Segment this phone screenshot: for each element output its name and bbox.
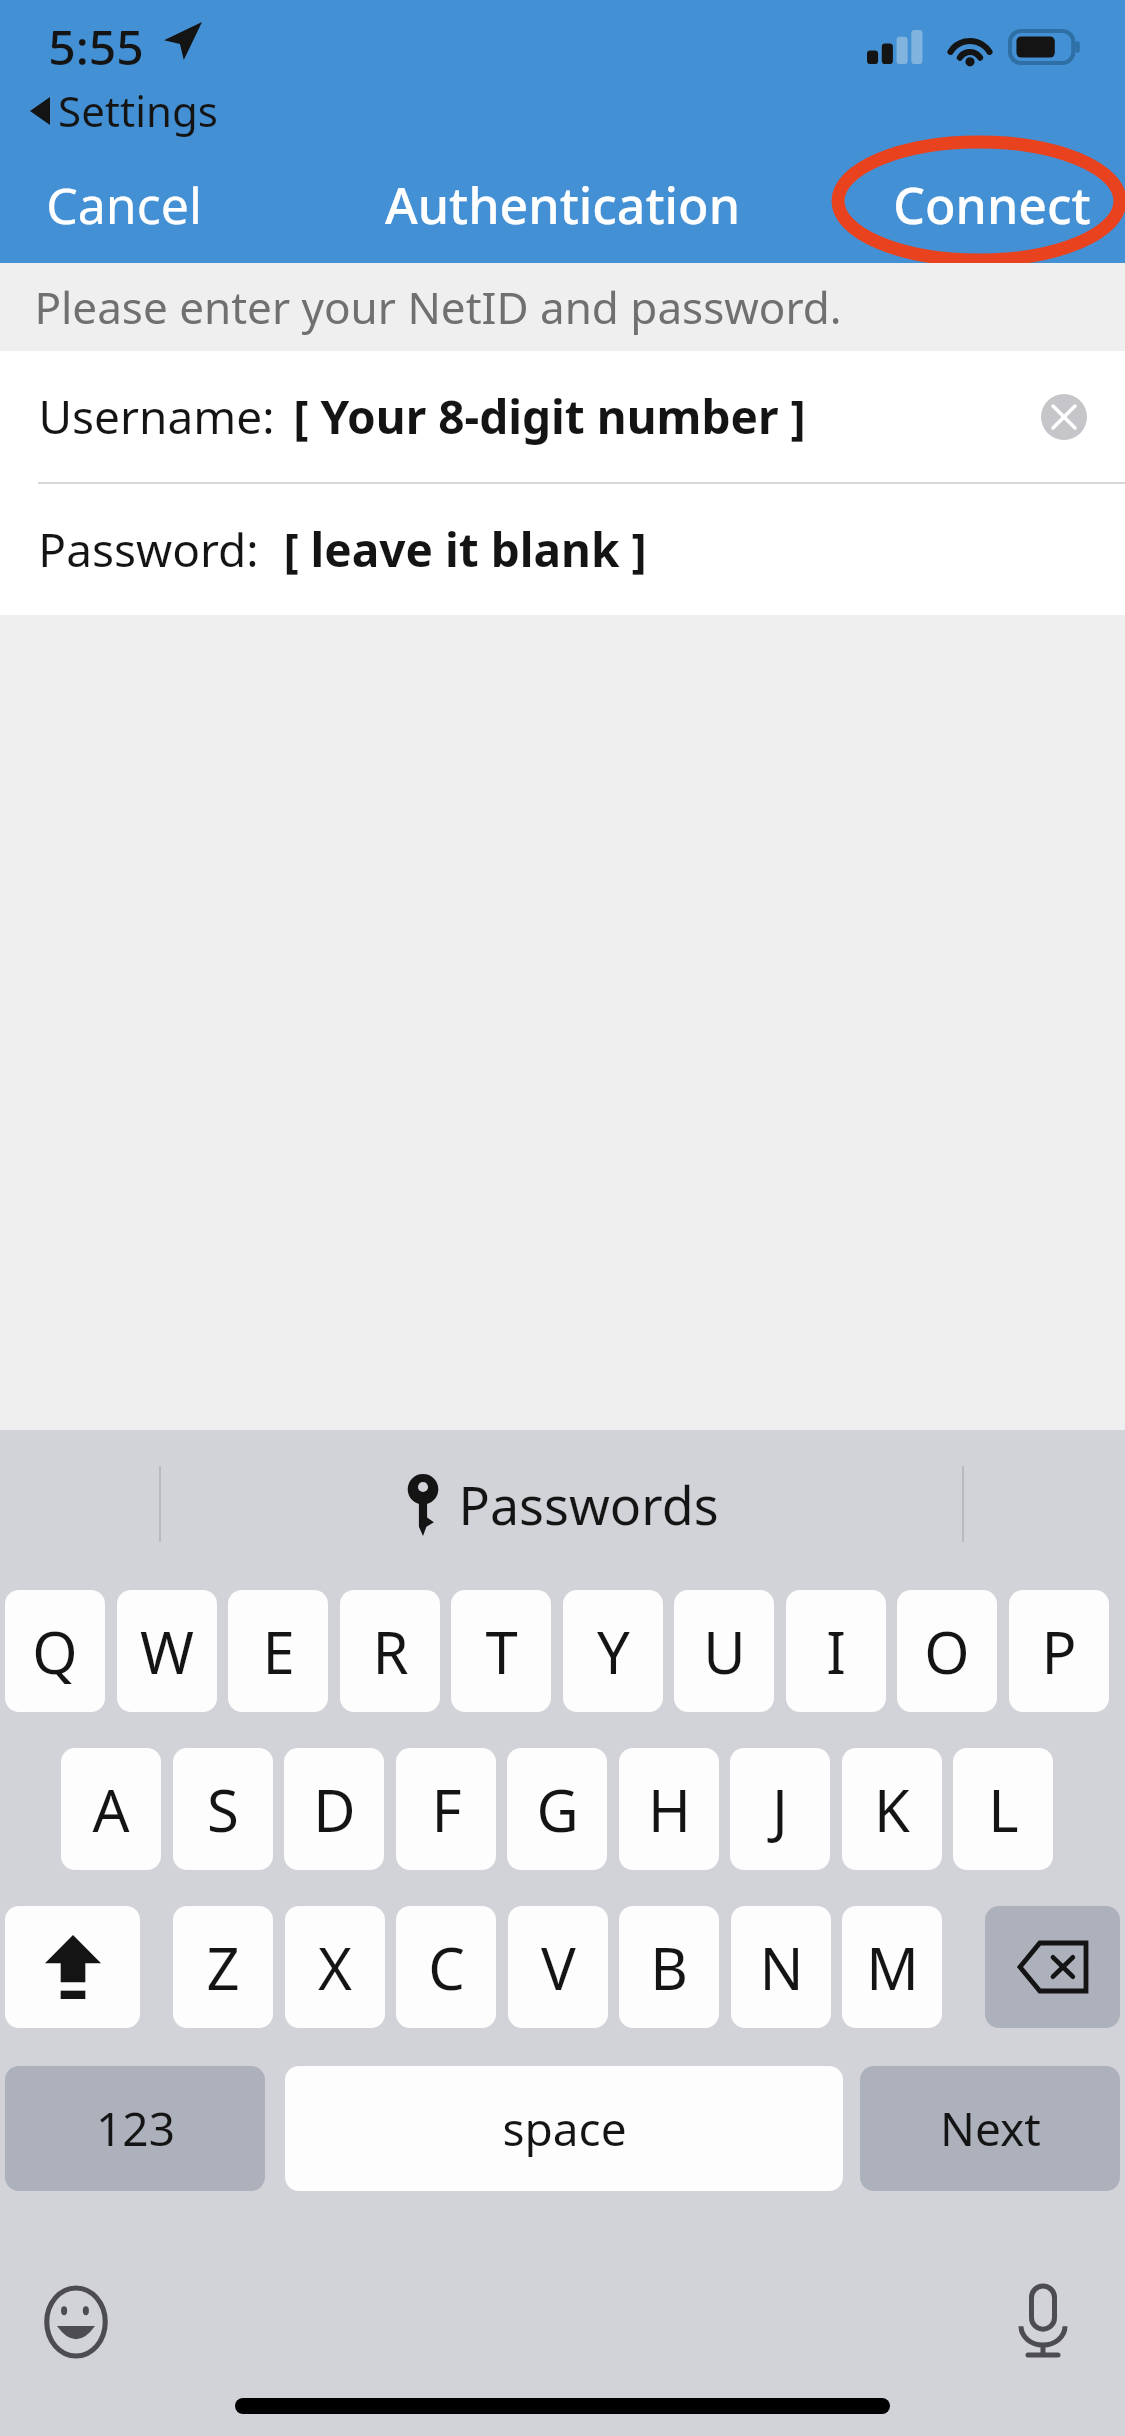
staticText: Z bbox=[206, 1928, 240, 2007]
button[interactable]: R bbox=[340, 1590, 440, 1712]
staticText: T bbox=[485, 1612, 518, 1691]
staticText: Y bbox=[597, 1612, 630, 1691]
button[interactable]: Clear text bbox=[1041, 394, 1087, 440]
staticText: B bbox=[650, 1928, 688, 2007]
button[interactable]: Settings bbox=[24, 76, 224, 145]
button[interactable]: Shift bbox=[5, 1906, 140, 2028]
staticText: space bbox=[502, 2097, 627, 2160]
staticText: W bbox=[140, 1612, 194, 1691]
button[interactable]: Cancel bbox=[0, 155, 226, 255]
button[interactable]: V bbox=[508, 1906, 608, 2028]
button[interactable]: space bbox=[285, 2066, 843, 2191]
button[interactable]: H bbox=[619, 1748, 719, 1870]
staticText: 5:55 bbox=[48, 14, 144, 79]
button[interactable]: G bbox=[507, 1748, 607, 1870]
button[interactable]: M bbox=[842, 1906, 942, 2028]
staticText: Settings bbox=[58, 82, 218, 139]
button[interactable]: J bbox=[730, 1748, 830, 1870]
staticText: Please enter your NetID and password. bbox=[34, 277, 842, 337]
button[interactable]: E bbox=[228, 1590, 328, 1712]
button[interactable]: Passwords bbox=[382, 1457, 743, 1552]
staticText: J bbox=[772, 1770, 788, 1849]
staticText: I bbox=[826, 1612, 846, 1691]
staticText: O bbox=[924, 1612, 970, 1691]
button[interactable]: Connect bbox=[869, 155, 1125, 255]
button[interactable]: I bbox=[786, 1590, 886, 1712]
staticText: Q bbox=[32, 1612, 78, 1691]
button[interactable]: T bbox=[451, 1590, 551, 1712]
staticText: Password: bbox=[38, 518, 259, 581]
button[interactable]: F bbox=[396, 1748, 496, 1870]
staticText: Next bbox=[940, 2097, 1041, 2160]
button[interactable]: S bbox=[173, 1748, 273, 1870]
staticText: E bbox=[262, 1612, 295, 1691]
button[interactable]: Backspace bbox=[985, 1906, 1120, 2028]
button[interactable]: Dictation bbox=[1018, 2286, 1068, 2358]
button[interactable]: Q bbox=[5, 1590, 105, 1712]
staticText: [ Your 8-digit number ] bbox=[293, 385, 806, 448]
staticText: C bbox=[428, 1928, 465, 2007]
button[interactable]: Y bbox=[563, 1590, 663, 1712]
staticText: 123 bbox=[96, 2097, 175, 2160]
staticText: D bbox=[313, 1770, 356, 1849]
button[interactable]: Z bbox=[173, 1906, 273, 2028]
staticText: N bbox=[759, 1928, 804, 2007]
button[interactable]: 123 bbox=[5, 2066, 265, 2191]
button[interactable]: Next bbox=[860, 2066, 1120, 2191]
button[interactable]: C bbox=[396, 1906, 496, 2028]
button[interactable]: X bbox=[285, 1906, 385, 2028]
button[interactable]: Username: bbox=[0, 351, 1125, 482]
staticText: F bbox=[431, 1770, 462, 1849]
staticText: A bbox=[92, 1770, 130, 1849]
staticText: V bbox=[541, 1928, 576, 2007]
staticText: Passwords bbox=[458, 1469, 719, 1540]
button[interactable]: U bbox=[674, 1590, 774, 1712]
button[interactable]: O bbox=[897, 1590, 997, 1712]
button[interactable]: B bbox=[619, 1906, 719, 2028]
button[interactable]: K bbox=[842, 1748, 942, 1870]
staticText: P bbox=[1041, 1612, 1077, 1691]
button[interactable]: D bbox=[284, 1748, 384, 1870]
staticText: G bbox=[536, 1770, 579, 1849]
staticText: U bbox=[703, 1612, 746, 1691]
staticText: K bbox=[874, 1770, 910, 1849]
button[interactable]: A bbox=[61, 1748, 161, 1870]
button[interactable]: P bbox=[1009, 1590, 1109, 1712]
staticText: M bbox=[866, 1928, 919, 2007]
staticText: X bbox=[318, 1928, 352, 2007]
button[interactable]: Emoji keyboard bbox=[42, 2288, 110, 2356]
button[interactable]: Password: bbox=[0, 484, 1125, 615]
button[interactable]: W bbox=[117, 1590, 217, 1712]
button[interactable]: N bbox=[731, 1906, 831, 2028]
staticText: Authentication bbox=[385, 171, 740, 239]
staticText: Username: bbox=[38, 385, 275, 448]
staticText: H bbox=[648, 1770, 691, 1849]
button[interactable]: L bbox=[953, 1748, 1053, 1870]
staticText: L bbox=[988, 1770, 1019, 1849]
staticText: R bbox=[372, 1612, 409, 1691]
staticText: S bbox=[207, 1770, 239, 1849]
staticText: [ leave it blank ] bbox=[283, 518, 647, 581]
